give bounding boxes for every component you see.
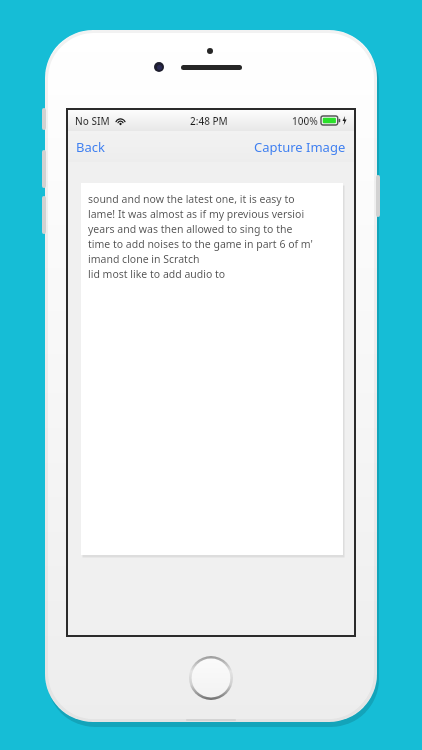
button[interactable]: Back <box>68 133 113 161</box>
button[interactable]: Capture Image <box>246 133 354 161</box>
staticText: Capture Image <box>254 138 346 156</box>
staticText: Back <box>76 138 105 156</box>
staticText: sound and now the latest one, it is easy… <box>88 192 313 281</box>
staticText: No SIM <box>75 114 110 128</box>
button[interactable]: sound and now the latest one, it is easy… <box>81 183 343 555</box>
staticText: 100% <box>292 114 318 128</box>
staticText: 2:48 PM <box>190 114 228 128</box>
button[interactable]: Home <box>189 656 233 700</box>
